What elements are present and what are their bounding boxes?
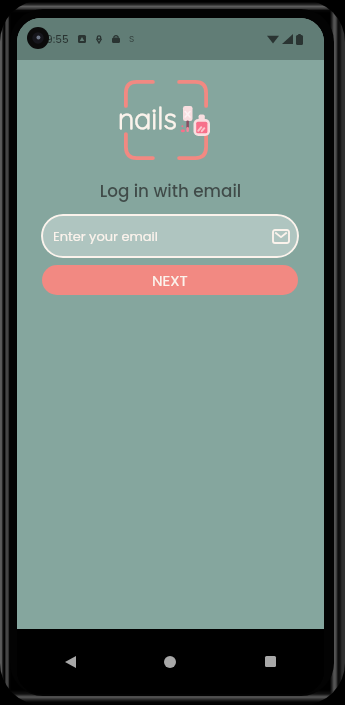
- staticText: NEXT: [152, 270, 188, 291]
- staticText: Log in with email: [17, 179, 324, 203]
- staticText: nails: [118, 100, 177, 136]
- staticText: 9:55: [46, 32, 69, 47]
- button[interactable]: Back: [21, 629, 120, 694]
- button[interactable]: Home: [120, 629, 220, 694]
- staticText: Enter your email: [53, 227, 159, 245]
- staticText: S: [129, 33, 135, 46]
- button[interactable]: NEXT: [42, 265, 298, 295]
- button[interactable]: Recent apps: [220, 629, 320, 694]
- button[interactable]: Enter your email: [41, 214, 299, 258]
